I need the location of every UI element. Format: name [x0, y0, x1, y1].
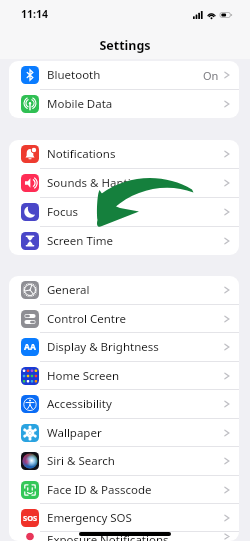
staticText: Screen Time: [47, 233, 114, 249]
button[interactable]: Siri & Search: [9, 447, 239, 475]
staticText: 11:14: [21, 7, 48, 21]
staticText: Focus: [47, 204, 79, 220]
staticText: Settings: [99, 37, 151, 54]
button[interactable]: Screen Time: [9, 227, 239, 255]
staticText: Wallpaper: [47, 425, 102, 441]
button[interactable]: AA: [9, 333, 239, 361]
button[interactable]: Mobile Data: [9, 90, 239, 118]
button[interactable]: Notifications: [9, 140, 239, 168]
button[interactable]: Focus: [9, 198, 239, 226]
staticText: General: [47, 282, 90, 298]
button[interactable]: Accessibility: [9, 390, 239, 418]
staticText: Home Screen: [47, 368, 120, 384]
staticText: On: [203, 68, 219, 83]
staticText: Emergency SOS: [47, 510, 132, 526]
staticText: Face ID & Passcode: [47, 482, 152, 498]
staticText: Accessibility: [47, 396, 112, 412]
button[interactable]: General: [9, 276, 239, 304]
staticText: Display & Brightness: [47, 339, 159, 355]
staticText: Control Centre: [47, 311, 126, 327]
button[interactable]: Home Screen: [9, 362, 239, 389]
button[interactable]: Face ID & Passcode: [9, 476, 239, 503]
staticText: Sounds & Haptics: [47, 175, 142, 191]
staticText: SOS: [23, 513, 38, 523]
staticText: Exposure Notifications: [47, 532, 169, 541]
button[interactable]: Sounds & Haptics: [9, 169, 239, 197]
staticText: AA: [24, 341, 36, 353]
staticText: Mobile Data: [47, 96, 113, 112]
button[interactable]: SOS: [9, 504, 239, 531]
button[interactable]: Wallpaper: [9, 419, 239, 446]
staticText: Notifications: [47, 146, 116, 162]
staticText: Siri & Search: [47, 453, 115, 469]
button[interactable]: Bluetooth: [9, 61, 239, 89]
button[interactable]: Control Centre: [9, 305, 239, 332]
staticText: Bluetooth: [47, 67, 101, 83]
button[interactable]: Exposure Notifications: [9, 532, 239, 541]
